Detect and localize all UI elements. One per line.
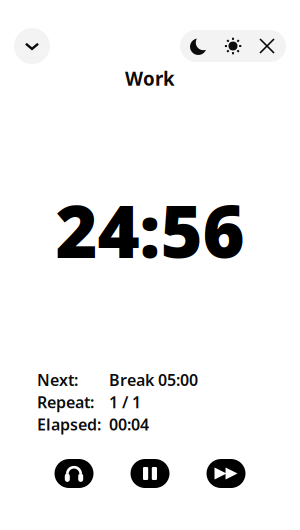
- button[interactable]: Close: [254, 33, 280, 59]
- staticText: Break 05:00: [109, 369, 198, 390]
- staticText: Repeat:: [37, 391, 94, 413]
- staticText: 1 / 1: [109, 391, 141, 413]
- staticText: Elapsed:: [37, 414, 101, 435]
- button[interactable]: Pause: [130, 459, 169, 488]
- button[interactable]: Sounds: [54, 459, 93, 488]
- button[interactable]: Skip to next: [206, 459, 245, 488]
- button[interactable]: Collapse: [14, 28, 50, 64]
- staticText: Work: [125, 66, 175, 91]
- button[interactable]: Dark appearance: [186, 33, 212, 59]
- staticText: 00:04: [109, 414, 149, 435]
- staticText: Next:: [37, 369, 78, 390]
- button[interactable]: Light appearance: [220, 33, 246, 59]
- staticText: 24:56: [55, 182, 244, 278]
